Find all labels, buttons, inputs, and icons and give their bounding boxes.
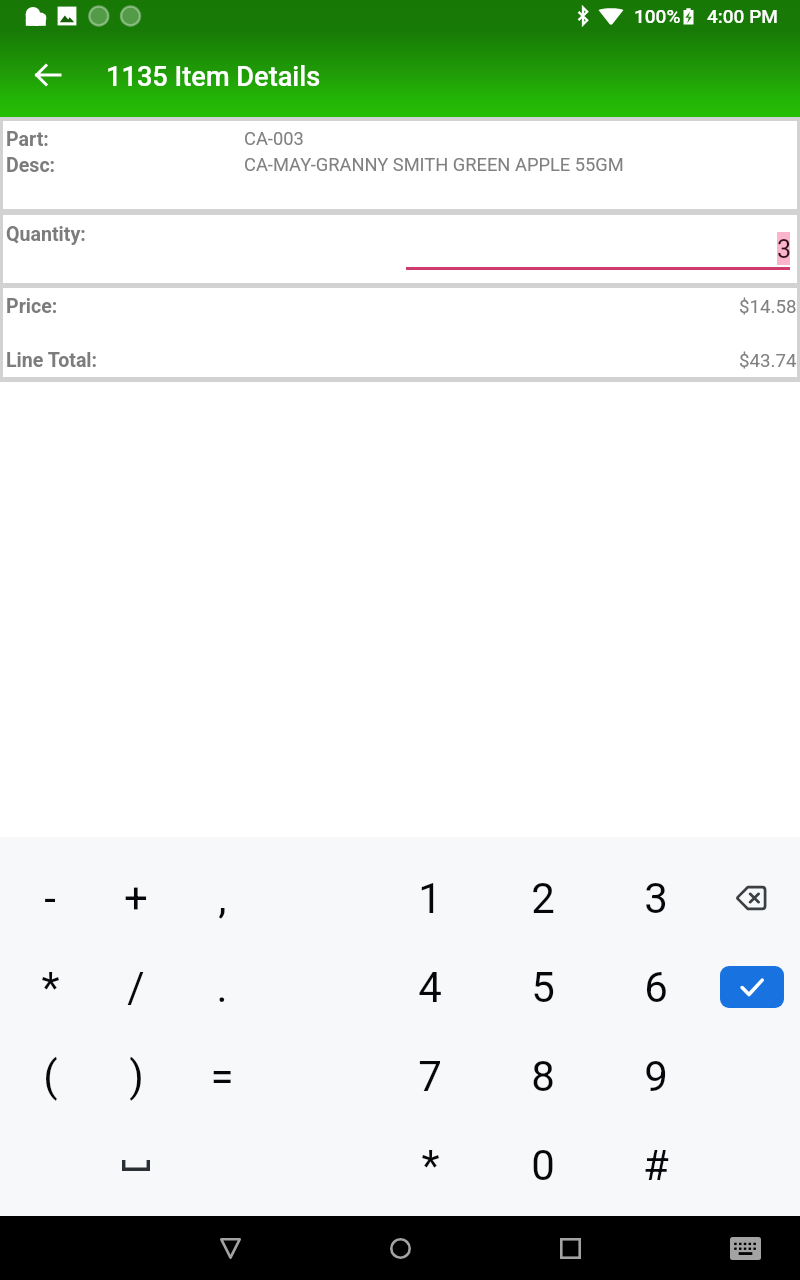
staticText: 9 (644, 1052, 668, 1101)
button[interactable]: * (378, 1122, 482, 1208)
staticText: Price: (6, 295, 58, 318)
staticText: * (421, 1141, 440, 1190)
staticText: , (218, 874, 227, 923)
staticText: 1135 Item Details (106, 61, 321, 93)
button[interactable]: # (604, 1122, 708, 1208)
staticText: + (124, 874, 148, 923)
staticText: CA-003 (244, 128, 304, 149)
button[interactable]: Quantity: (3, 215, 797, 283)
button[interactable]: 0 (491, 1122, 595, 1208)
button[interactable]: ( (0, 1033, 102, 1119)
staticText: = (210, 1052, 234, 1101)
button[interactable]: 8 (491, 1033, 595, 1119)
button[interactable]: . (170, 944, 274, 1030)
button[interactable]: - (0, 855, 102, 941)
staticText: - (44, 874, 56, 923)
staticText: $43.74 (739, 350, 797, 372)
button[interactable]: 7 (378, 1033, 482, 1119)
staticText: 0 (531, 1141, 555, 1190)
button[interactable]: Back (194, 1216, 266, 1280)
staticText: Part: (6, 128, 49, 151)
staticText: 7 (418, 1052, 442, 1101)
staticText: 100% (634, 5, 681, 27)
staticText: Quantity: (6, 223, 86, 246)
staticText: ) (129, 1052, 144, 1101)
button[interactable]: Enter (700, 944, 800, 1030)
staticText: 5 (531, 963, 555, 1012)
button[interactable]: 9 (604, 1033, 708, 1119)
staticText: $14.58 (739, 296, 797, 318)
button[interactable]: Home (364, 1216, 436, 1280)
staticText: Desc: (6, 154, 56, 177)
button[interactable]: 4 (378, 944, 482, 1030)
staticText: ( (43, 1052, 58, 1101)
button[interactable]: , (170, 855, 274, 941)
staticText: CA-MAY-GRANNY SMITH GREEN APPLE 55GM (244, 154, 624, 175)
staticText: 4:00 PM (707, 5, 778, 27)
button[interactable]: Space (84, 1122, 188, 1208)
staticText: 3 (644, 874, 668, 923)
staticText: / (127, 963, 145, 1012)
staticText: . (216, 963, 228, 1012)
button[interactable]: 2 (491, 855, 595, 941)
button[interactable]: = (170, 1033, 274, 1119)
staticText: 3 (777, 235, 792, 264)
button[interactable]: 5 (491, 944, 595, 1030)
button[interactable]: 3 (604, 855, 708, 941)
button[interactable]: Navigate up (20, 47, 76, 103)
staticText: 1 (418, 874, 442, 923)
staticText: 2 (531, 874, 555, 923)
button[interactable]: Switch keyboard (709, 1216, 781, 1280)
button[interactable]: Backspace (700, 855, 800, 941)
button[interactable]: Recent apps (534, 1216, 606, 1280)
button[interactable]: / (84, 944, 188, 1030)
button[interactable]: ) (84, 1033, 188, 1119)
staticText: 8 (531, 1052, 555, 1101)
staticText: Line Total: (6, 349, 98, 372)
button[interactable]: + (84, 855, 188, 941)
staticText: # (643, 1141, 669, 1190)
staticText: * (41, 963, 60, 1012)
button[interactable]: 6 (604, 944, 708, 1030)
button[interactable]: 1 (378, 855, 482, 941)
staticText: 6 (644, 963, 668, 1012)
button[interactable]: * (0, 944, 102, 1030)
staticText: 4 (418, 963, 442, 1012)
